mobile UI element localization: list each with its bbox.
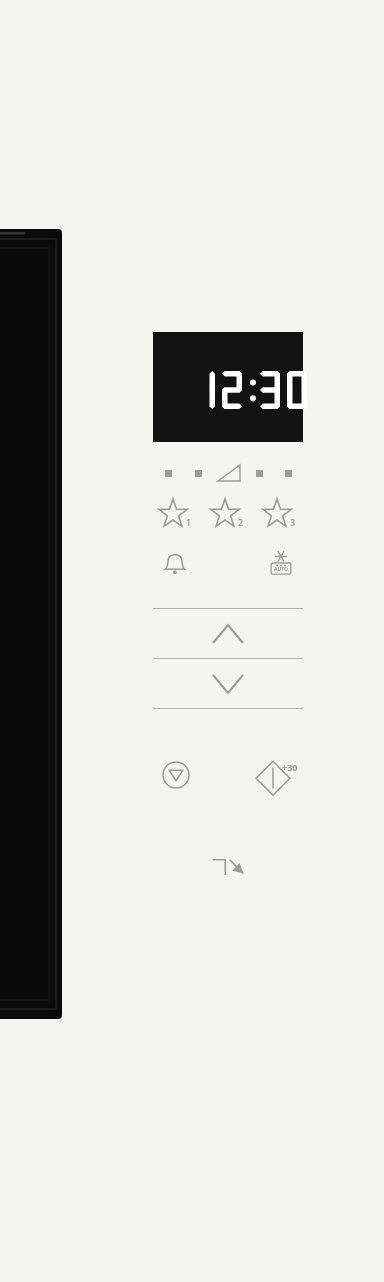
button[interactable]: Favourite program 1 <box>153 498 199 532</box>
button[interactable]: Timer alarm <box>153 546 197 580</box>
staticText: AUTO <box>274 566 288 573</box>
button[interactable]: Increase <box>153 609 303 658</box>
staticText: 3 <box>290 516 296 528</box>
button[interactable]: Oven door <box>0 229 62 1019</box>
button[interactable]: Decrease <box>153 659 303 708</box>
button[interactable]: Add 30 seconds <box>253 755 303 795</box>
staticText: 2 <box>238 516 244 528</box>
button[interactable]: Clock display 12:30 <box>153 332 303 442</box>
staticText: 1 <box>186 516 192 528</box>
button[interactable]: Favourite program 3 <box>257 498 303 532</box>
staticText: +30 <box>282 761 298 773</box>
button[interactable]: Stop <box>153 755 199 795</box>
button[interactable]: Auto defrost <box>259 546 303 580</box>
button[interactable]: Favourite program 2 <box>205 498 251 532</box>
button[interactable]: Open door <box>153 843 303 887</box>
